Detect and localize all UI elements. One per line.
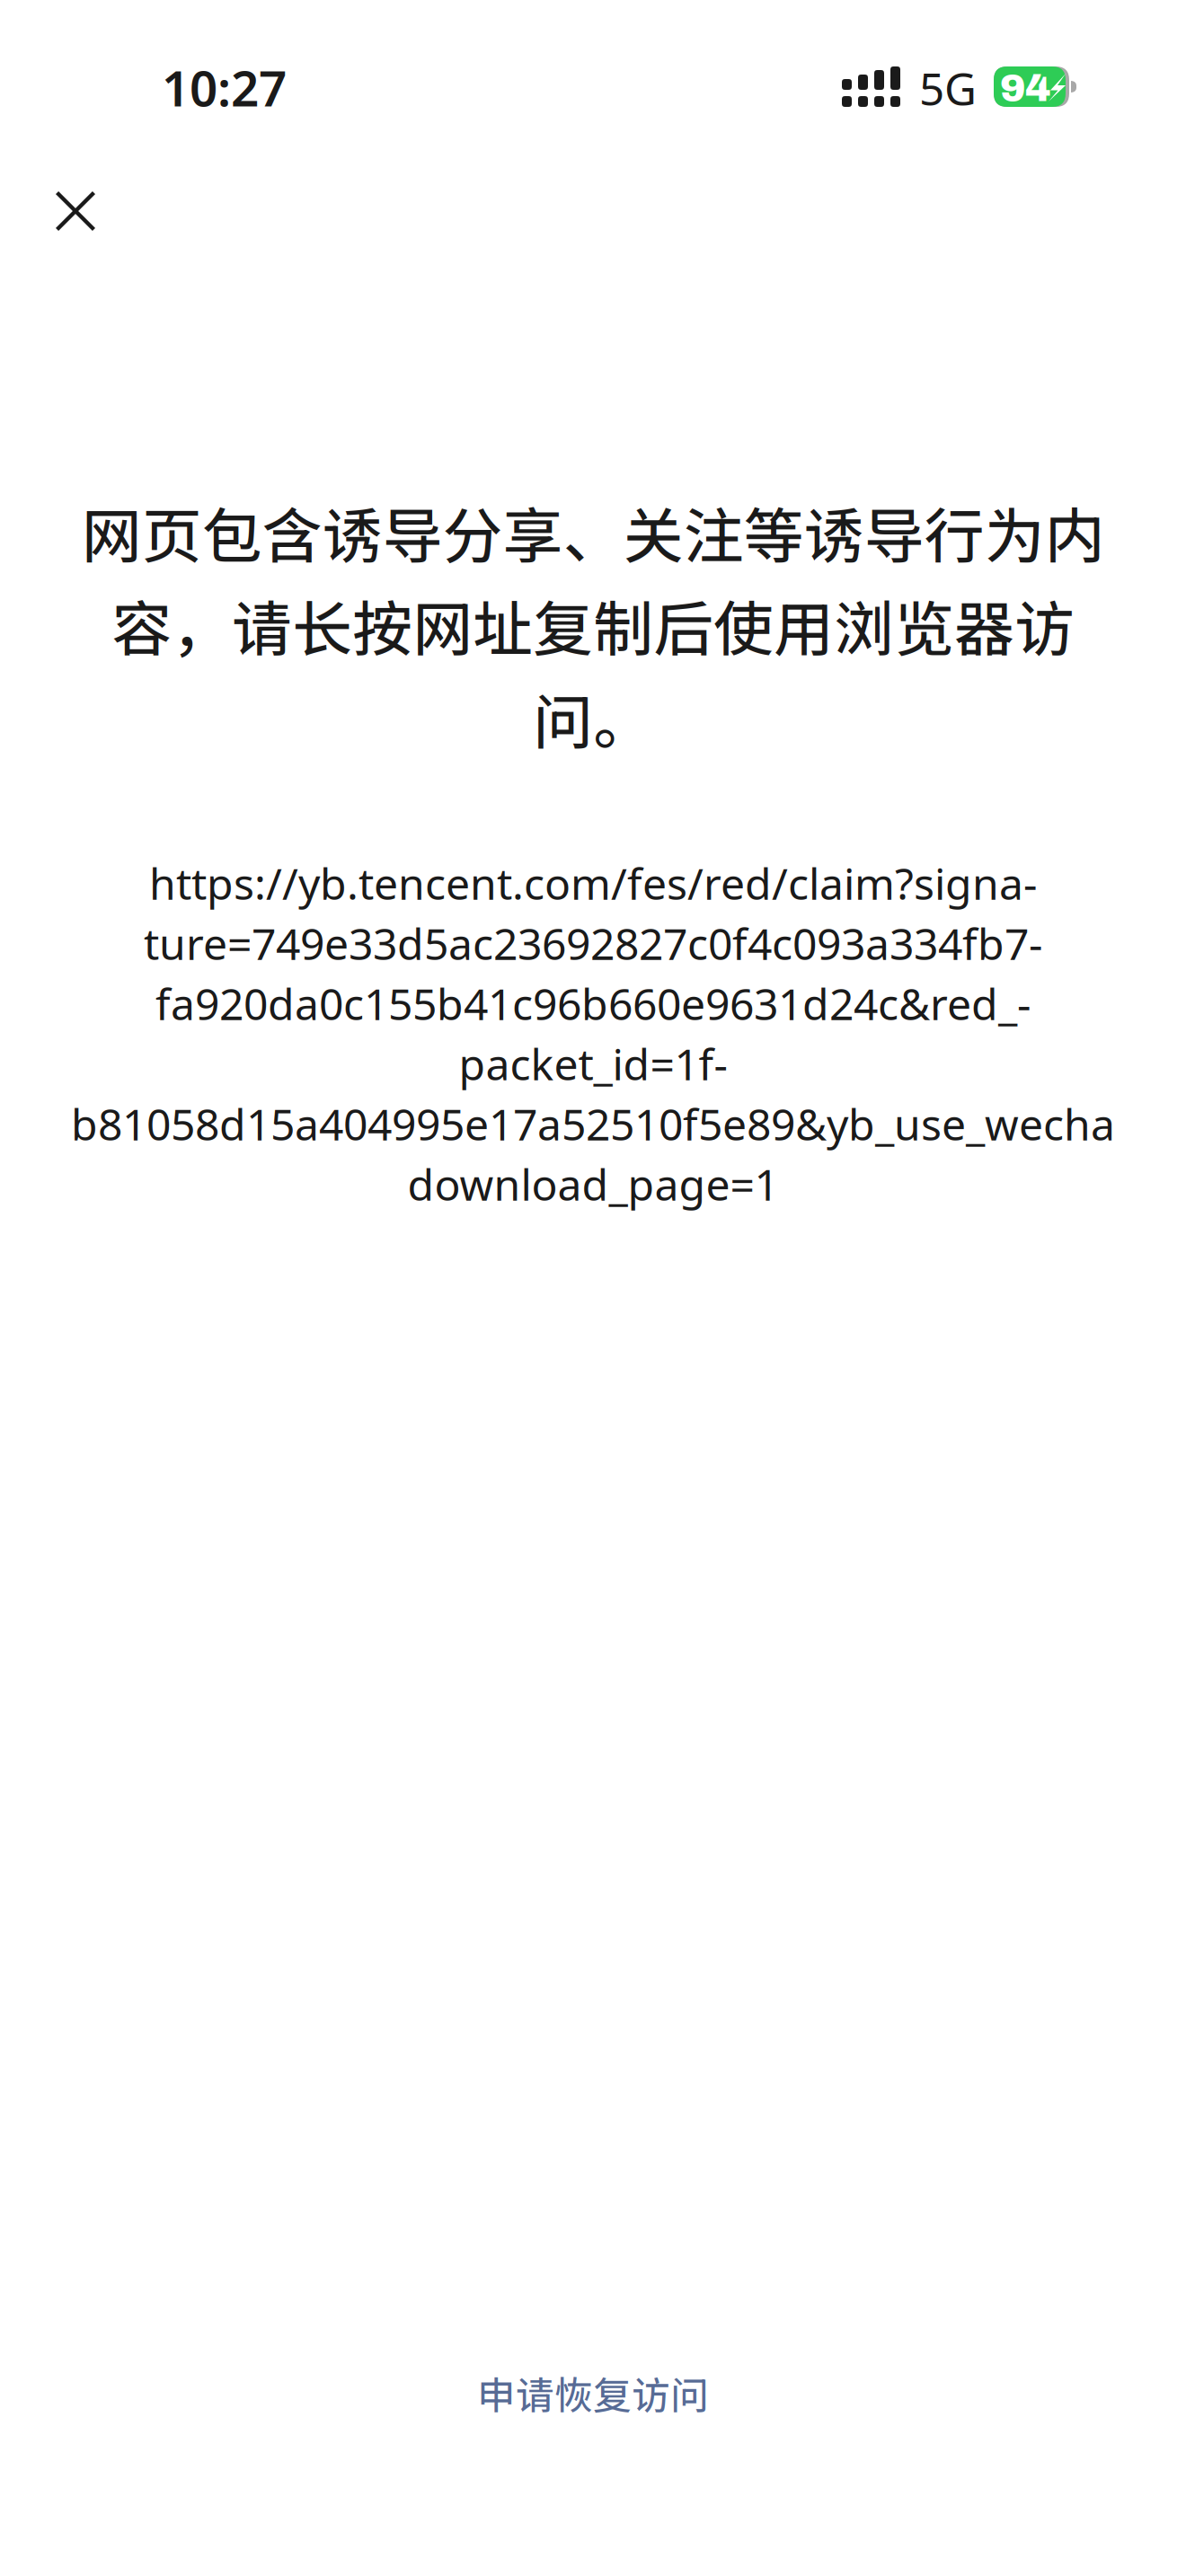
staticText: download_page=1 [407,1155,779,1212]
staticText: 申请恢复访问 [477,2365,709,2421]
staticText: b81058d15a404995e17a52510f5e89&yb_use_we… [71,1095,1115,1152]
staticText: ture=749e33d5ac23692827c0f4c093a334fb7- [144,915,1042,972]
staticText: 10:27 [162,55,287,120]
staticText: 网页包含诱导分享、关注等诱导行为内容，请长按网址复制后使用浏览器访问。 [81,489,1105,761]
staticText: 5G [919,58,977,117]
staticText: packet_id=1f- [459,1035,727,1092]
staticText: https://yb.tencent.com/fes/red/claim?sig… [149,854,1037,912]
staticText: fa920da0c155b41c96b660e9631d24c&red_- [155,975,1031,1032]
staticText: 94 [1000,67,1050,109]
button[interactable]: 申请恢复访问 [477,2365,709,2421]
button[interactable]: Close [56,191,95,231]
